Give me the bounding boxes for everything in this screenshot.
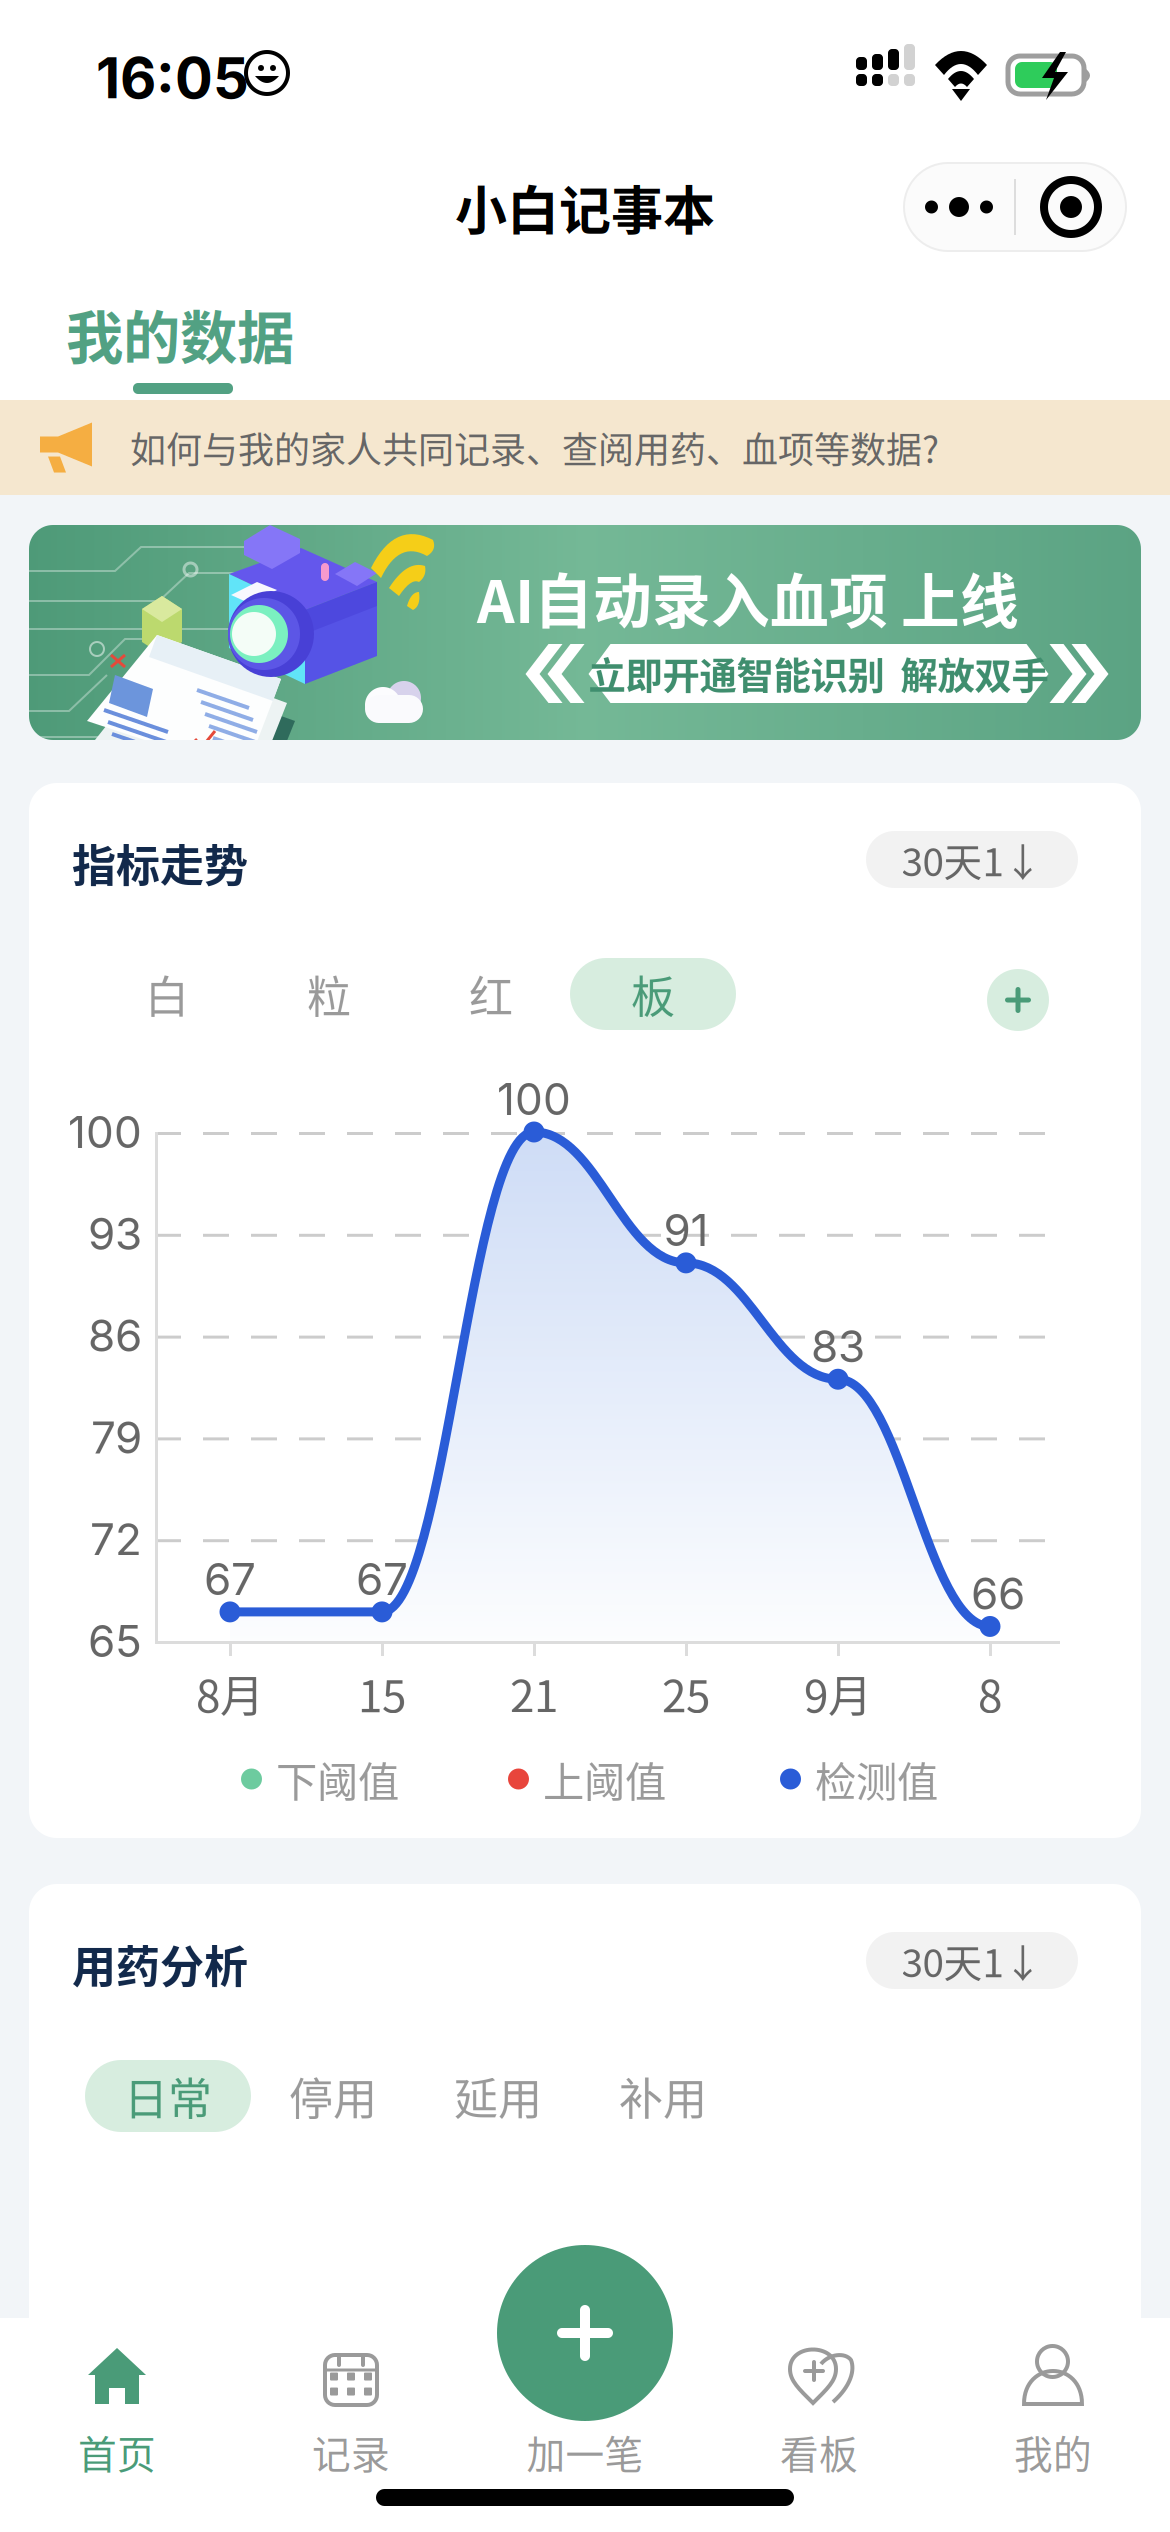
staticText: 板 [631, 962, 675, 1026]
staticText: 我的 [1014, 2424, 1092, 2480]
staticText: 小白记事本 [455, 169, 715, 245]
button[interactable]: 首页 [0, 2318, 234, 2532]
staticText: 67 [356, 1552, 408, 1605]
staticText: 83 [811, 1320, 865, 1373]
staticText: 加一笔 [526, 2424, 643, 2480]
button[interactable]: 红 [408, 958, 574, 1030]
staticText: 用药分析 [72, 1932, 248, 1996]
staticText: 65 [88, 1614, 142, 1668]
button[interactable]: 补用 [580, 2060, 746, 2132]
staticText: 指标走势 [72, 831, 248, 895]
button[interactable]: AI自动录入血项 上线 [0, 525, 1170, 740]
staticText: 日常 [124, 2064, 212, 2128]
staticText: 8月 [196, 1661, 264, 1725]
staticText: 停用 [289, 2064, 377, 2128]
staticText: 检测值 [815, 1749, 938, 1809]
staticText: 100 [497, 1072, 571, 1126]
button[interactable]: 如何与我的家人共同记录、查阅用药、血项等数据? [0, 400, 1170, 495]
staticText: 8 [978, 1661, 1002, 1725]
button[interactable]: Add entry [497, 2245, 673, 2421]
staticText: 看板 [780, 2424, 858, 2480]
staticText: 如何与我的家人共同记录、查阅用药、血项等数据? [130, 421, 939, 473]
staticText: 首页 [78, 2424, 156, 2480]
staticText: 66 [971, 1567, 1025, 1620]
button[interactable]: 板 [570, 958, 736, 1030]
button[interactable]: 看板 [702, 2318, 936, 2532]
staticText: 记录 [312, 2424, 390, 2480]
staticText: 9月 [804, 1661, 872, 1725]
staticText: 93 [88, 1207, 142, 1260]
staticText: 100 [68, 1105, 142, 1159]
button[interactable]: Add indicator [987, 969, 1049, 1031]
staticText: 粒 [307, 962, 351, 1026]
staticText: 30天1↓ [901, 1932, 1042, 1988]
staticText: 67 [204, 1552, 256, 1605]
button[interactable]: 粒 [246, 958, 412, 1030]
button[interactable]: 记录 [234, 2318, 468, 2532]
button[interactable]: 白 [84, 958, 250, 1030]
button[interactable]: 加一笔 [468, 2318, 702, 2532]
button[interactable]: 30天1↓ [866, 831, 1078, 888]
staticText: 21 [510, 1661, 558, 1725]
staticText: 72 [90, 1513, 142, 1566]
staticText: AI自动录入血项 上线 [477, 555, 1019, 640]
staticText: 延用 [454, 2064, 542, 2128]
staticText: 86 [88, 1309, 142, 1362]
staticText: 79 [91, 1411, 142, 1464]
staticText: 91 [663, 1203, 708, 1256]
staticText: 下阈值 [276, 1749, 399, 1809]
staticText: 我的数据 [66, 292, 294, 375]
staticText: 立即开通智能识别 解放双手 [588, 646, 1048, 701]
staticText: 16:05 [96, 44, 249, 112]
staticText: 补用 [619, 2064, 707, 2128]
staticText: 白 [145, 962, 189, 1026]
button[interactable]: 我的 [936, 2318, 1170, 2532]
button[interactable]: 日常 [85, 2060, 251, 2132]
button[interactable]: 停用 [250, 2060, 416, 2132]
staticText: 红 [469, 962, 513, 1026]
button[interactable]: 30天1↓ [866, 1932, 1078, 1989]
button[interactable]: More [904, 163, 1126, 251]
staticText: 15 [358, 1661, 406, 1725]
staticText: 上阈值 [543, 1749, 666, 1809]
staticText: 30天1↓ [901, 831, 1042, 887]
staticText: 25 [662, 1661, 710, 1725]
button[interactable]: 延用 [415, 2060, 581, 2132]
